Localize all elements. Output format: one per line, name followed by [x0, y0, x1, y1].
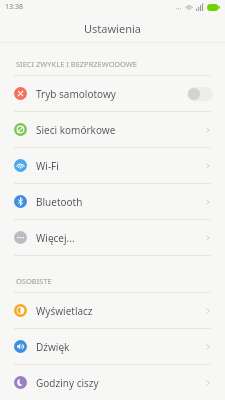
staticText: Sieci komórkowe	[36, 123, 203, 137]
button[interactable]: Dźwięk	[0, 329, 225, 364]
staticText: Wi-Fi	[36, 159, 203, 173]
button[interactable]: Bluetooth	[0, 184, 225, 219]
button[interactable]: Sieci komórkowe	[0, 112, 225, 147]
staticText: Więcej...	[36, 231, 203, 245]
button[interactable]: Tryb samolotowy	[0, 76, 225, 111]
button[interactable]: Wi-Fi	[0, 148, 225, 183]
staticText: Ustawienia	[84, 21, 141, 36]
button[interactable]: Airplane mode toggle	[187, 87, 213, 101]
staticText: Tryb samolotowy	[36, 87, 187, 101]
button[interactable]: Więcej...	[0, 220, 225, 255]
staticText: Wyświetlacz	[36, 304, 203, 318]
staticText: 13:38	[5, 2, 23, 12]
staticText: OSOBISTE	[16, 276, 52, 286]
button[interactable]: Godziny ciszy	[0, 365, 225, 400]
staticText: Dźwięk	[36, 340, 203, 354]
staticText: Godziny ciszy	[36, 376, 203, 390]
button[interactable]: Wyświetlacz	[0, 293, 225, 328]
staticText: SIECI ZWYKLE I BEZPRZEWODOWE	[16, 59, 137, 69]
staticText: Bluetooth	[36, 195, 203, 209]
